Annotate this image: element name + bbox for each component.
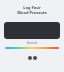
button[interactable]: [4, 22, 60, 39]
staticText: Normal: [0, 41, 64, 45]
staticText: Log Your Blood Pressure: [0, 5, 64, 15]
